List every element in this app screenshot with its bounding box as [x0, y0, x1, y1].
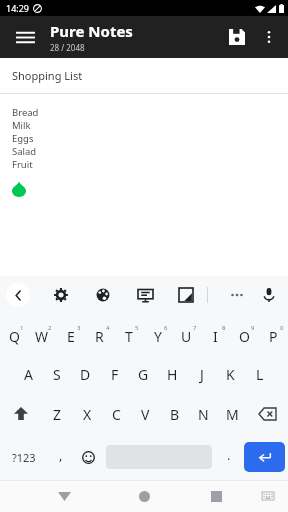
staticText: X [83, 405, 92, 424]
button[interactable]: Y [143, 314, 172, 354]
staticText: D [80, 365, 91, 384]
staticText: U [181, 327, 192, 346]
button[interactable]: M [218, 394, 247, 434]
staticText: A [24, 365, 33, 384]
button[interactable]: O [230, 314, 259, 354]
button[interactable]: A [14, 354, 42, 394]
staticText: ?123 [12, 450, 36, 465]
button[interactable]: U [172, 314, 201, 354]
button[interactable]: Shift [0, 394, 42, 434]
staticText: 28 / 2048 [50, 42, 85, 53]
button[interactable]: More options [254, 22, 284, 52]
staticText: 6 [164, 324, 168, 332]
button[interactable]: E [56, 314, 85, 354]
button[interactable]: Stickers [132, 282, 158, 308]
button[interactable]: More [224, 282, 250, 308]
staticText: 4 [106, 324, 110, 332]
staticText: R [95, 327, 104, 346]
button[interactable]: Switch keyboard [256, 484, 280, 508]
staticText: N [198, 405, 209, 424]
staticText: F [111, 365, 119, 384]
button[interactable]: Enter [244, 442, 285, 472]
staticText: Q [9, 327, 20, 346]
button[interactable]: W [28, 314, 56, 354]
staticText: T [125, 327, 133, 346]
staticText: O [239, 327, 250, 346]
staticText: W [35, 327, 49, 346]
staticText: I [213, 327, 218, 346]
button[interactable]: G [129, 354, 158, 394]
staticText: P [269, 327, 278, 346]
staticText: H [167, 365, 178, 384]
staticText: B [170, 405, 180, 424]
staticText: J [200, 365, 204, 384]
staticText: L [256, 365, 264, 384]
button[interactable]: Settings [48, 282, 74, 308]
button[interactable]: V [131, 394, 160, 434]
staticText: 8 [222, 324, 226, 332]
button[interactable]: Recent apps [202, 482, 230, 510]
button[interactable]: Back [6, 283, 30, 307]
button[interactable]: , [48, 434, 74, 480]
button[interactable]: R [85, 314, 114, 354]
button[interactable]: Q [0, 314, 28, 354]
staticText: Bread [12, 106, 39, 119]
button[interactable]: Clipboard [173, 282, 199, 308]
button[interactable]: . [216, 434, 241, 480]
staticText: 7 [193, 324, 197, 332]
staticText: K [226, 365, 235, 384]
staticText: V [141, 405, 150, 424]
button[interactable]: X [72, 394, 102, 434]
button[interactable]: Emoji [74, 434, 102, 480]
staticText: M [226, 405, 239, 424]
button[interactable]: I [201, 314, 230, 354]
staticText: 9 [251, 324, 255, 332]
button[interactable]: K [216, 354, 245, 394]
button[interactable]: B [160, 394, 189, 434]
staticText: Pure Notes [50, 21, 133, 41]
staticText: 1 [20, 324, 24, 332]
button[interactable]: Home [130, 482, 158, 510]
staticText: Fruit [12, 158, 33, 171]
staticText: Milk [12, 119, 31, 132]
staticText: 2 [48, 324, 52, 332]
staticText: Shopping List [12, 68, 83, 83]
button[interactable]: N [189, 394, 218, 434]
button[interactable]: C [102, 394, 131, 434]
staticText: 14:29 [6, 2, 30, 14]
staticText: Y [154, 327, 162, 346]
staticText: 0 [280, 324, 284, 332]
staticText: 5 [135, 324, 139, 332]
button[interactable]: D [71, 354, 100, 394]
staticText: E [67, 327, 75, 346]
button[interactable]: H [158, 354, 187, 394]
staticText: Z [53, 405, 62, 424]
button[interactable]: S [42, 354, 71, 394]
button[interactable]: ?123 [0, 434, 48, 480]
button[interactable]: Backspace [247, 394, 288, 434]
button[interactable]: J [187, 354, 216, 394]
staticText: , [59, 446, 63, 464]
button[interactable]: Open navigation menu [8, 20, 42, 54]
button[interactable]: F [100, 354, 129, 394]
button[interactable]: T [114, 314, 143, 354]
button[interactable]: Z [42, 394, 72, 434]
button[interactable]: P [259, 314, 288, 354]
staticText: 3 [77, 324, 81, 332]
staticText: . [227, 446, 231, 464]
button[interactable]: L [245, 354, 274, 394]
button[interactable]: Themes [90, 282, 116, 308]
button[interactable]: Back [50, 482, 78, 510]
button[interactable]: Voice input [256, 282, 282, 308]
staticText: C [112, 405, 121, 424]
staticText: S [53, 365, 61, 384]
staticText: G [138, 365, 149, 384]
button[interactable]: Save note [220, 20, 254, 54]
staticText: Salad [12, 145, 37, 158]
staticText: Eggs [12, 132, 34, 145]
